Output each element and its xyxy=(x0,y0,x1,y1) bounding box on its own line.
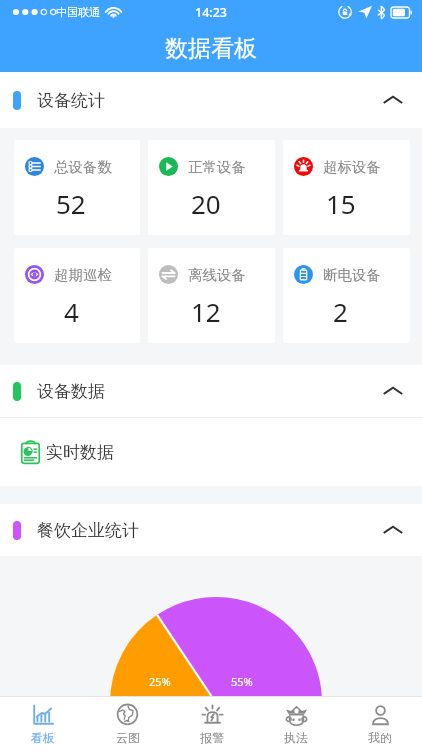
staticText: 14:23 xyxy=(195,4,228,21)
staticText: 云图 xyxy=(116,730,140,745)
staticText: 25% xyxy=(149,674,171,689)
staticText: 实时数据 xyxy=(46,442,114,463)
button[interactable]: 设备统计 xyxy=(0,72,422,128)
button[interactable]: 总设备数 xyxy=(14,140,140,235)
staticText: 我的 xyxy=(368,730,392,745)
button[interactable]: 我的 xyxy=(338,697,422,750)
button[interactable]: 正常设备 xyxy=(148,140,275,235)
button[interactable]: 餐饮企业统计 xyxy=(0,504,422,556)
staticText: 12 xyxy=(191,294,221,329)
staticText: 设备统计 xyxy=(37,90,105,111)
button[interactable]: 断电设备 xyxy=(283,248,410,343)
staticText: 正常设备 xyxy=(188,158,246,176)
staticText: 数据看板 xyxy=(165,34,257,63)
staticText: 看板 xyxy=(31,730,55,745)
button[interactable]: 执法 xyxy=(254,697,338,750)
staticText: 15 xyxy=(326,186,356,221)
button[interactable]: 设备数据 xyxy=(0,365,422,417)
button[interactable]: 离线设备 xyxy=(148,248,275,343)
button[interactable]: 报警 xyxy=(170,697,254,750)
staticText: 4 xyxy=(64,294,79,329)
staticText: 离线设备 xyxy=(188,266,246,284)
other: Collapse xyxy=(383,90,403,110)
button[interactable]: 云图 xyxy=(85,697,170,750)
staticText: 55% xyxy=(231,674,253,689)
other: Collapse xyxy=(383,520,403,540)
staticText: 中国联通 xyxy=(56,5,100,19)
staticText: 超标设备 xyxy=(323,158,381,176)
staticText: 20 xyxy=(191,186,221,221)
button[interactable]: 看板 xyxy=(0,697,85,750)
button[interactable]: 超标设备 xyxy=(283,140,410,235)
staticText: 断电设备 xyxy=(323,266,381,284)
staticText: 总设备数 xyxy=(54,158,112,176)
staticText: 2 xyxy=(333,294,348,329)
other: Collapse xyxy=(383,381,403,401)
button[interactable]: 超期巡检 xyxy=(14,248,140,343)
staticText: 设备数据 xyxy=(37,381,105,402)
staticText: 报警 xyxy=(200,730,224,745)
staticText: 执法 xyxy=(284,730,308,745)
staticText: 超期巡检 xyxy=(54,266,112,284)
staticText: 餐饮企业统计 xyxy=(37,520,139,541)
staticText: 52 xyxy=(56,186,86,221)
button[interactable]: 实时数据 xyxy=(0,418,422,486)
